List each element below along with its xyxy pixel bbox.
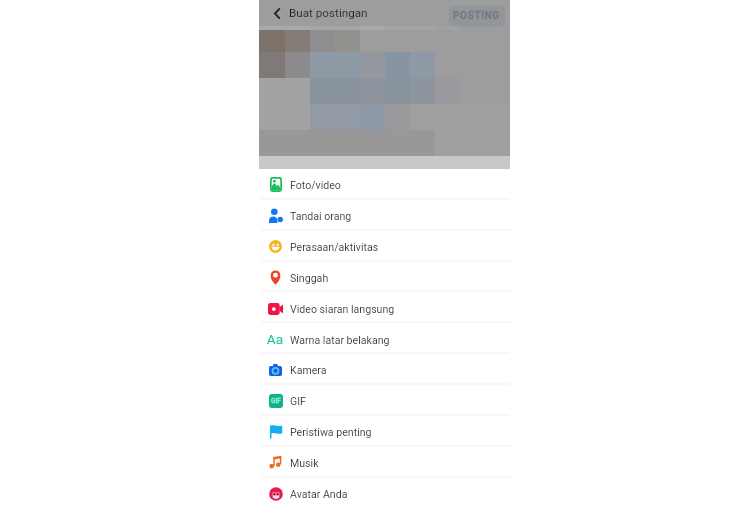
button[interactable]: Foto/video xyxy=(259,169,510,200)
button[interactable]: Tandai orang xyxy=(259,200,510,231)
staticText: Video siaran langsung xyxy=(290,303,395,315)
staticText: Singgah xyxy=(290,272,329,284)
button[interactable]: Avatar Anda xyxy=(259,478,510,508)
staticText: Buat postingan xyxy=(289,6,368,20)
staticText: Perasaan/aktivitas xyxy=(290,241,379,253)
staticText: Kamera xyxy=(290,364,327,376)
button[interactable]: Kamera xyxy=(259,354,510,385)
staticText: Musik xyxy=(290,457,319,469)
button[interactable]: Back xyxy=(266,2,288,24)
staticText: GIF xyxy=(271,397,281,405)
button[interactable]: GIF xyxy=(259,385,510,416)
button[interactable]: Aa xyxy=(259,324,510,355)
button[interactable]: Video siaran langsung xyxy=(259,293,510,324)
button[interactable]: POSTING xyxy=(449,6,505,26)
staticText: Foto/video xyxy=(290,179,341,191)
button[interactable]: Peristiwa penting xyxy=(259,416,510,447)
staticText: POSTING xyxy=(453,10,501,22)
button[interactable]: Musik xyxy=(259,447,510,478)
staticText: GIF xyxy=(290,395,306,407)
staticText: Warna latar belakang xyxy=(290,334,390,346)
staticText: Tandai orang xyxy=(290,210,352,222)
staticText: Peristiwa penting xyxy=(290,426,372,438)
staticText: Avatar Anda xyxy=(290,488,348,500)
button[interactable]: Singgah xyxy=(259,262,510,293)
button[interactable]: Perasaan/aktivitas xyxy=(259,231,510,262)
staticText: Aa xyxy=(264,331,286,346)
